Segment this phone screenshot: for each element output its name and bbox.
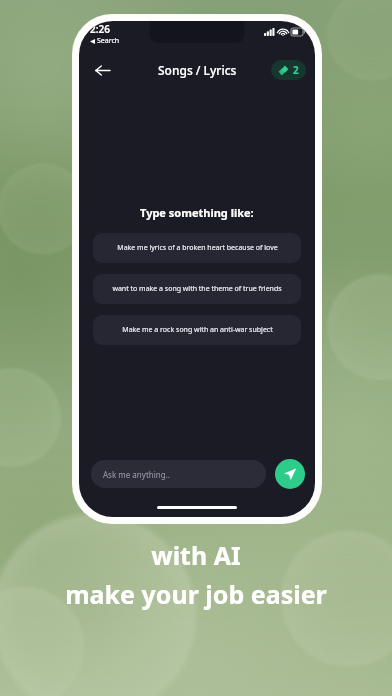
button[interactable]: Make me a rock song with an anti-war sub… bbox=[93, 315, 301, 345]
button[interactable]: Ask me anything.. bbox=[91, 460, 266, 488]
button[interactable]: Make me lyrics of a broken heart because… bbox=[93, 233, 301, 263]
staticText: with AI bbox=[151, 538, 241, 572]
button[interactable]: Back bbox=[87, 55, 117, 85]
staticText: 2 bbox=[293, 63, 299, 77]
button[interactable]: want to make a song with the theme of tr… bbox=[93, 274, 301, 304]
staticText: want to make a song with the theme of tr… bbox=[112, 284, 282, 294]
staticText: make your job easier bbox=[65, 577, 327, 611]
staticText: 2:26 bbox=[90, 22, 110, 36]
button[interactable]: 2 bbox=[271, 60, 306, 80]
staticText: Type something like: bbox=[140, 205, 254, 220]
staticText: Songs / Lyrics bbox=[158, 62, 237, 78]
staticText: Make me lyrics of a broken heart because… bbox=[117, 243, 278, 253]
button[interactable]: Send bbox=[275, 459, 305, 489]
staticText: Search bbox=[97, 36, 120, 46]
staticText: Make me a rock song with an anti-war sub… bbox=[122, 325, 273, 335]
staticText: Ask me anything.. bbox=[103, 469, 170, 480]
